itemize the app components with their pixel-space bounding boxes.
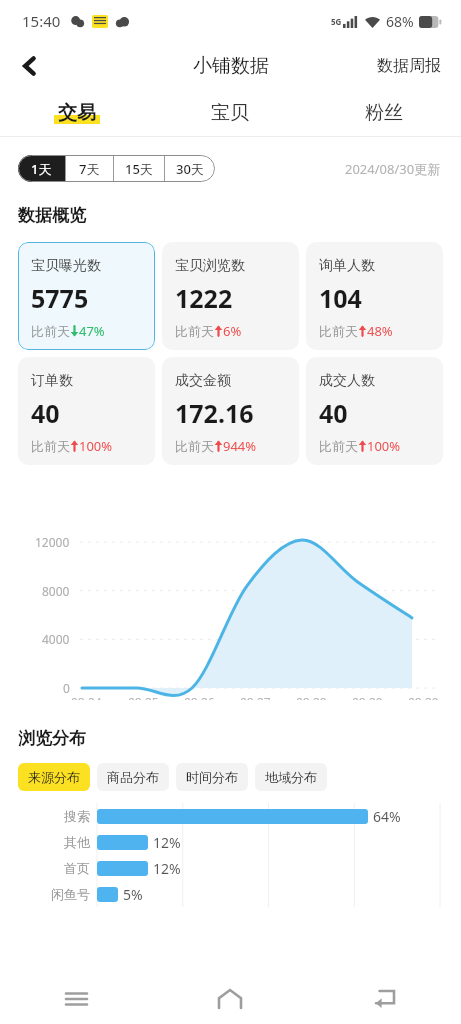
button[interactable]: Back [307,974,461,1024]
staticText: 5G [331,16,342,27]
staticText: 08.29 [352,694,383,700]
staticText: 2024/08/30更新 [345,160,441,178]
staticText: 08.25 [128,694,159,700]
staticText: 浏览分布 [18,728,86,749]
staticText: 40 [31,396,60,430]
button[interactable]: 闲鱼号 [0,881,461,907]
staticText: 比前天 [175,438,214,454]
staticText: 4000 [42,631,70,647]
staticText: 7天 [79,160,100,178]
staticText: 首页 [64,860,90,876]
staticText: 08.26 [184,694,215,700]
staticText: 64% [373,807,401,826]
button[interactable]: Recents [0,974,153,1024]
staticText: 比前天 [319,323,358,339]
staticText: 6% [223,322,242,340]
staticText: 12000 [35,534,70,550]
button[interactable]: Home [153,974,307,1024]
staticText: 100% [367,437,401,455]
staticText: 68% [386,12,414,31]
button[interactable]: 宝贝 [153,90,307,136]
staticText: 粉丝 [365,101,403,125]
staticText: 100% [79,437,113,455]
button[interactable]: 成交人数 [306,357,443,465]
button[interactable]: 商品分布 [97,763,169,791]
staticText: 48% [367,322,393,340]
staticText: 订单数 [31,372,73,390]
staticText: 数据周报 [377,56,441,76]
button[interactable]: 15天 [114,155,164,182]
staticText: 时间分布 [186,769,238,785]
button[interactable]: 询单人数 [306,242,443,350]
staticText: 搜索 [64,808,90,824]
staticText: 15:40 [22,11,61,31]
button[interactable]: 时间分布 [176,763,248,791]
staticText: 8000 [42,583,70,599]
staticText: 成交金额 [175,372,231,390]
button[interactable]: 宝贝曝光数 [18,242,155,350]
staticText: 其他 [64,834,90,850]
staticText: 比前天 [31,438,70,454]
staticText: 询单人数 [319,257,375,275]
staticText: 5775 [31,281,89,315]
staticText: 08.30 [408,694,439,700]
staticText: 944% [223,437,257,455]
button[interactable]: 成交金额 [162,357,299,465]
staticText: 1天 [31,160,52,178]
staticText: 比前天 [31,323,70,339]
staticText: 08.24 [71,694,102,700]
staticText: 08.28 [296,694,327,700]
staticText: 小铺数据 [193,54,269,78]
staticText: 交易 [58,101,96,125]
button[interactable]: Back [8,44,52,88]
button[interactable]: 其他 [0,829,461,855]
button[interactable]: 地域分布 [255,763,327,791]
button[interactable]: 首页 [0,855,461,881]
staticText: 比前天 [319,438,358,454]
staticText: 47% [79,322,105,340]
staticText: 宝贝 [211,101,249,125]
staticText: 比前天 [175,323,214,339]
staticText: 12% [153,833,181,852]
staticText: 0 [63,680,70,696]
button[interactable]: 数据周报 [377,56,441,76]
staticText: 商品分布 [107,769,159,785]
staticText: 成交人数 [319,372,375,390]
button[interactable]: 搜索 [0,803,461,829]
staticText: 40 [319,396,348,430]
staticText: 闲鱼号 [51,886,90,902]
staticText: 宝贝浏览数 [175,257,245,275]
button[interactable]: 7天 [66,155,113,182]
button[interactable]: 1天 [18,155,65,182]
button[interactable]: 交易 [0,90,153,136]
staticText: 15天 [125,160,153,178]
staticText: 12% [153,859,181,878]
staticText: 08.27 [240,694,271,700]
staticText: 30天 [176,160,204,178]
staticText: 104 [319,281,362,315]
button[interactable]: 粉丝 [307,90,461,136]
button[interactable]: 30天 [165,155,215,182]
staticText: 地域分布 [265,769,317,785]
button[interactable]: 订单数 [18,357,155,465]
button[interactable]: 来源分布 [18,763,90,791]
staticText: 5% [123,885,143,904]
staticText: 1222 [175,281,233,315]
staticText: 数据概览 [18,205,86,226]
staticText: 172.16 [175,396,254,430]
staticText: 宝贝曝光数 [31,257,101,275]
staticText: 来源分布 [28,769,80,785]
button[interactable]: 宝贝浏览数 [162,242,299,350]
